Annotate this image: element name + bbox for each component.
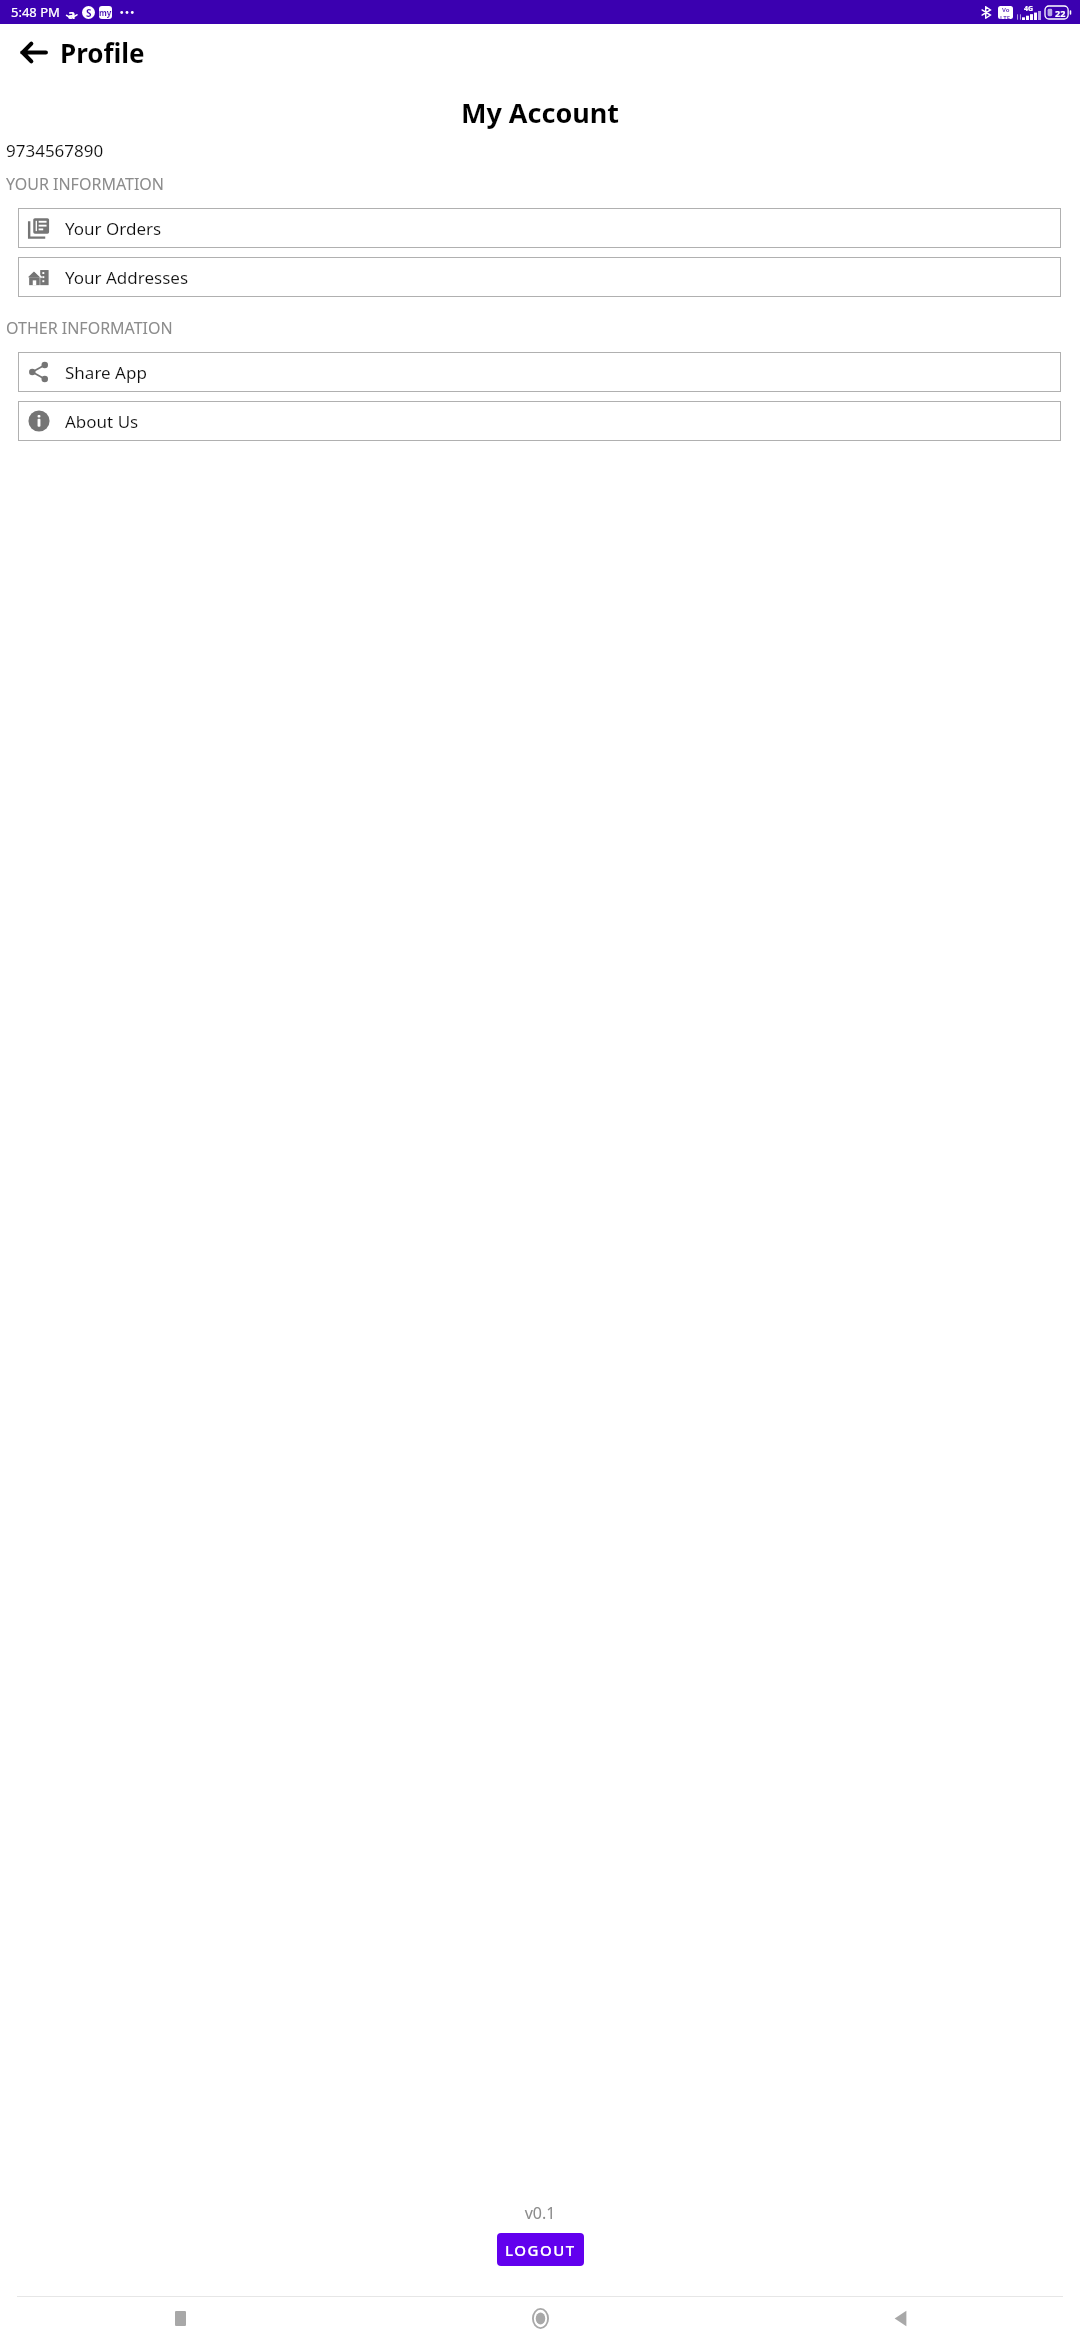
button[interactable]: Share App [18, 352, 1061, 392]
button[interactable]: LOGOUT [497, 2233, 584, 2266]
staticText: YOUR INFORMATION [6, 173, 164, 195]
button[interactable]: Your Orders [18, 208, 1061, 248]
staticText: Your Addresses [65, 266, 189, 289]
staticText: My Account [0, 94, 1080, 131]
staticText: a [68, 6, 76, 19]
staticText: LTE [1000, 14, 1011, 19]
button[interactable]: Home [360, 2297, 720, 2340]
staticText: 22 [1055, 7, 1066, 19]
button[interactable]: Recents [0, 2297, 360, 2340]
staticText: Profile [60, 35, 145, 70]
staticText: LOGOUT [505, 2240, 576, 2260]
button[interactable]: Back [11, 30, 55, 74]
button[interactable]: About Us [18, 401, 1061, 441]
button[interactable]: Your Addresses [18, 257, 1061, 297]
staticText: About Us [65, 410, 139, 433]
staticText: my [99, 7, 112, 18]
staticText: Share App [65, 361, 147, 384]
staticText: Your Orders [65, 217, 162, 240]
staticText: S [86, 6, 92, 19]
staticText: v0.1 [0, 2202, 1080, 2224]
staticText: 9734567890 [6, 139, 104, 162]
staticText: 4G [1024, 4, 1034, 14]
button[interactable]: Back [720, 2297, 1080, 2340]
staticText: OTHER INFORMATION [6, 317, 173, 339]
staticText: 5:48 PM [11, 3, 60, 21]
staticText: Vo [1002, 6, 1010, 14]
